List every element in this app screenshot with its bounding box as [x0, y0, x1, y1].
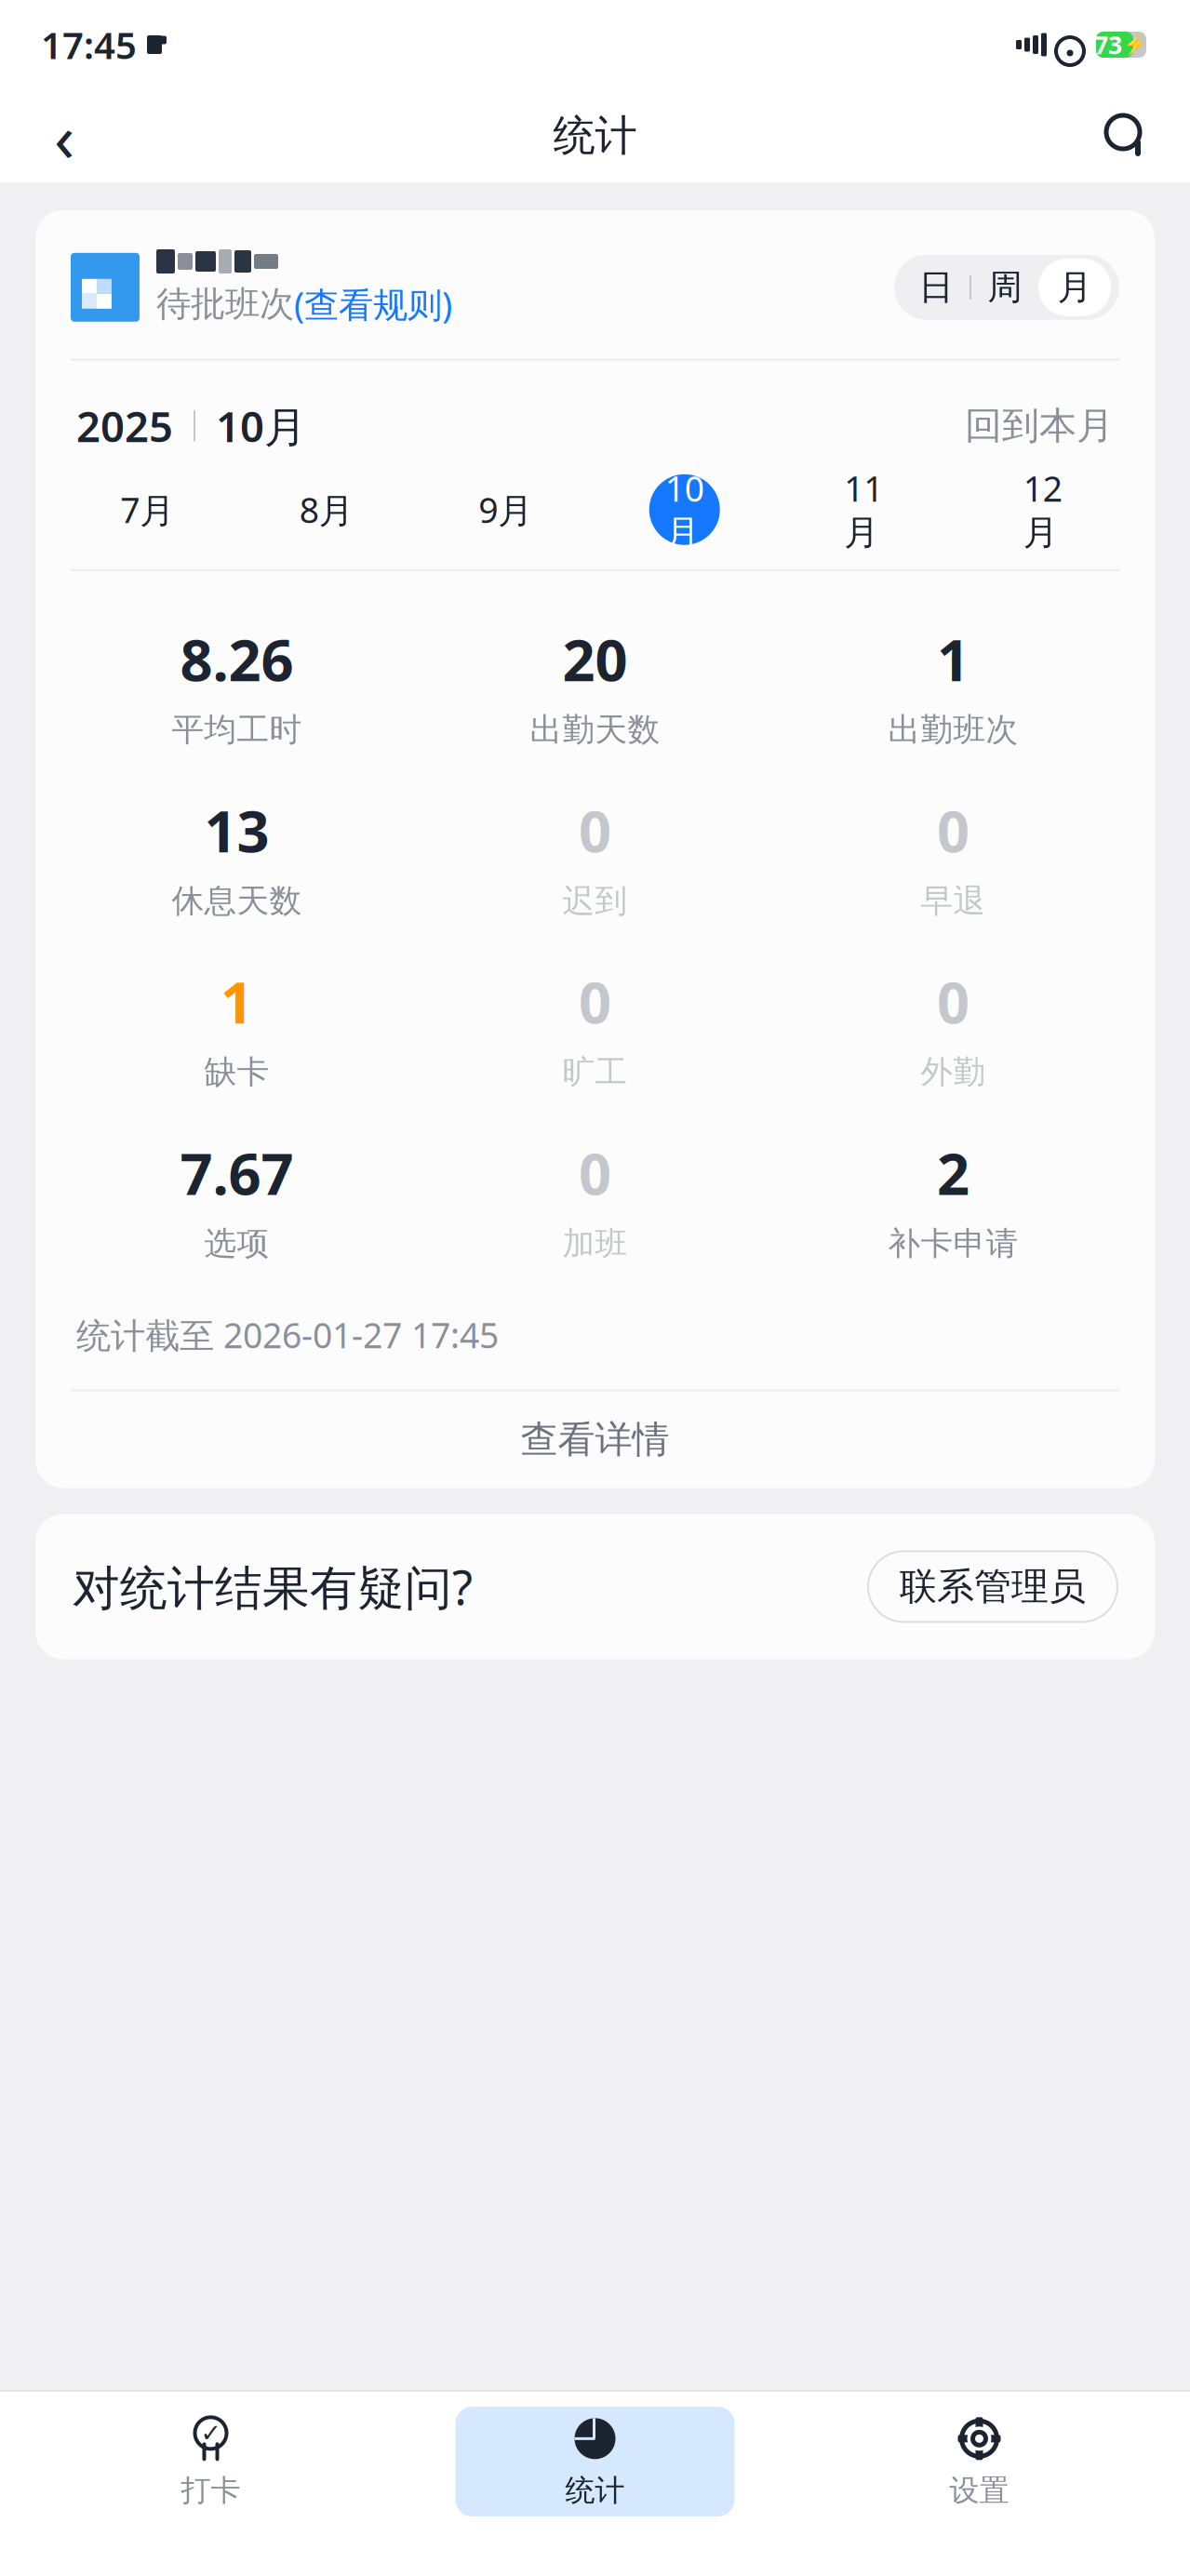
staticText: 休息天数	[172, 881, 302, 921]
staticText: 外勤	[921, 1052, 986, 1092]
staticText: 日	[919, 266, 953, 309]
button[interactable]: 返回	[32, 103, 97, 168]
staticText: 打卡	[181, 2472, 241, 2509]
button[interactable]: 月	[1038, 258, 1111, 316]
staticText: 加班	[562, 1224, 628, 1263]
button[interactable]: 日	[903, 257, 969, 318]
staticText: 周	[988, 266, 1022, 309]
button[interactable]: 7月	[112, 474, 183, 545]
staticText: 早退	[921, 881, 986, 921]
staticText: 20	[562, 621, 628, 697]
staticText: 旷工	[562, 1052, 628, 1092]
staticText: 迟到	[562, 881, 628, 921]
button[interactable]: 联系管理员	[868, 1551, 1117, 1622]
staticText: 9月	[478, 487, 532, 533]
staticText: 出勤天数	[530, 710, 660, 750]
staticText: 设置	[949, 2472, 1009, 2509]
staticText: ‹	[54, 91, 74, 180]
staticText: 0	[937, 964, 969, 1039]
button[interactable]: 搜索	[1093, 103, 1158, 168]
staticText: 2	[937, 1135, 969, 1211]
staticText: 待批班次	[156, 283, 294, 325]
staticText: (查看规则)	[294, 281, 452, 327]
staticText: 1	[221, 964, 253, 1039]
staticText: 0	[579, 792, 611, 868]
staticText: 统计	[553, 110, 637, 162]
staticText: 统计	[565, 2472, 625, 2509]
staticText: 缺卡	[204, 1052, 269, 1092]
staticText: 月	[1057, 266, 1092, 309]
staticText: 统计截至 2026-01-27 17:45	[76, 1312, 499, 1358]
staticText: ✓	[201, 2419, 221, 2447]
button[interactable]: 10月	[649, 474, 720, 545]
staticText: 0	[579, 964, 611, 1039]
button[interactable]: 待批班次	[156, 281, 452, 327]
button[interactable]: 设置	[840, 2407, 1119, 2516]
staticText: 10月	[665, 465, 704, 554]
button[interactable]: 查看详情	[35, 1391, 1155, 1488]
button[interactable]: 周	[971, 257, 1038, 318]
staticText: 对统计结果有疑问?	[73, 1555, 473, 1618]
button[interactable]: 统计	[455, 2407, 735, 2516]
staticText: 12月	[1023, 465, 1062, 554]
button[interactable]: 9月	[470, 474, 541, 545]
staticText: 查看详情	[521, 1417, 669, 1462]
staticText: 2025	[76, 398, 173, 454]
button[interactable]: 12月	[1007, 474, 1078, 545]
staticText: 0	[579, 1135, 611, 1211]
staticText: 11月	[844, 465, 883, 554]
staticText: 13	[204, 792, 269, 868]
staticText: 回到本月	[965, 403, 1114, 449]
button[interactable]: 8月	[291, 474, 362, 545]
staticText: 平均工时	[172, 710, 302, 750]
staticText: 8月	[299, 487, 353, 533]
staticText: 联系管理员	[900, 1564, 1086, 1609]
button[interactable]: 回到本月	[965, 403, 1114, 449]
staticText: 7月	[120, 487, 174, 533]
staticText: ⚡	[1123, 33, 1148, 56]
staticText: 73	[1094, 28, 1122, 61]
staticText: 出勤班次	[888, 710, 1018, 750]
staticText: 8.26	[180, 621, 294, 697]
staticText: 17:45	[41, 20, 137, 69]
staticText: 7.67	[180, 1135, 294, 1211]
staticText: 选项	[204, 1224, 269, 1263]
button[interactable]: ✓	[71, 2407, 350, 2516]
staticText: 补卡申请	[888, 1224, 1018, 1263]
staticText: 10月	[216, 398, 306, 454]
staticText: 0	[937, 792, 969, 868]
button[interactable]: 11月	[828, 474, 899, 545]
staticText: 1	[937, 621, 969, 697]
